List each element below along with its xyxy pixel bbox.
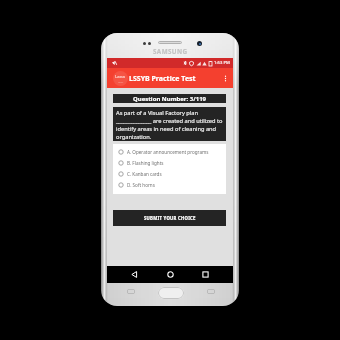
button[interactable]: More options bbox=[219, 72, 231, 84]
button[interactable]: Back bbox=[127, 267, 142, 282]
staticText: SUBMIT YOUR CHOICE bbox=[144, 215, 196, 221]
staticText: C. Kanban cards bbox=[127, 171, 162, 177]
staticText: organization. bbox=[116, 133, 152, 141]
staticText: As part of a Visual Factory plan bbox=[116, 109, 198, 117]
button[interactable]: B. Flashing lights bbox=[113, 157, 226, 168]
staticText: acad bbox=[118, 80, 124, 83]
button[interactable]: D. Soft horns bbox=[113, 179, 226, 190]
staticText: LSSYB Practice Test bbox=[129, 74, 196, 84]
staticText: 1:53 PM bbox=[214, 60, 230, 66]
staticText: identify areas in need of cleaning and bbox=[116, 125, 217, 133]
staticText: ______________ are created and utilized … bbox=[116, 117, 223, 125]
staticText: Lana bbox=[115, 74, 126, 80]
staticText: Question Number: 3/119 bbox=[133, 95, 206, 103]
staticText: A. Operator announcement programs bbox=[127, 149, 209, 155]
staticText: D. Soft horns bbox=[127, 182, 155, 188]
button[interactable]: C. Kanban cards bbox=[113, 168, 226, 179]
button[interactable]: Home bbox=[163, 267, 178, 282]
button[interactable]: SUBMIT YOUR CHOICE bbox=[113, 210, 226, 226]
staticText: SAMSUNG bbox=[153, 47, 188, 56]
staticText: B. Flashing lights bbox=[127, 160, 164, 166]
button[interactable]: A. Operator announcement programs bbox=[113, 146, 226, 157]
button[interactable]: Recent apps bbox=[198, 267, 213, 282]
